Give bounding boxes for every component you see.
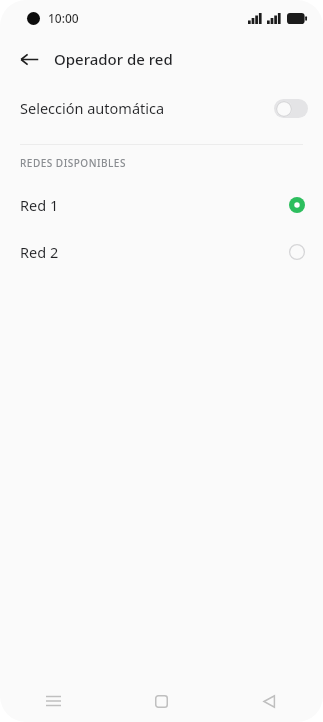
button[interactable]: Back <box>215 680 323 722</box>
staticText: Red 1 <box>20 195 59 215</box>
button[interactable]: Selección automática <box>0 82 323 134</box>
staticText: 10:00 <box>48 10 79 26</box>
staticText: Red 2 <box>20 242 59 262</box>
button[interactable]: Recent apps <box>0 680 107 722</box>
staticText: Selección automática <box>20 98 165 118</box>
staticText: REDES DISPONIBLES <box>20 156 126 170</box>
staticText: Operador de red <box>54 49 173 69</box>
button[interactable]: Red 2 <box>0 228 323 275</box>
button[interactable]: Red 1 <box>0 181 323 228</box>
button[interactable]: Home <box>107 680 215 722</box>
button[interactable]: Back <box>10 40 48 78</box>
